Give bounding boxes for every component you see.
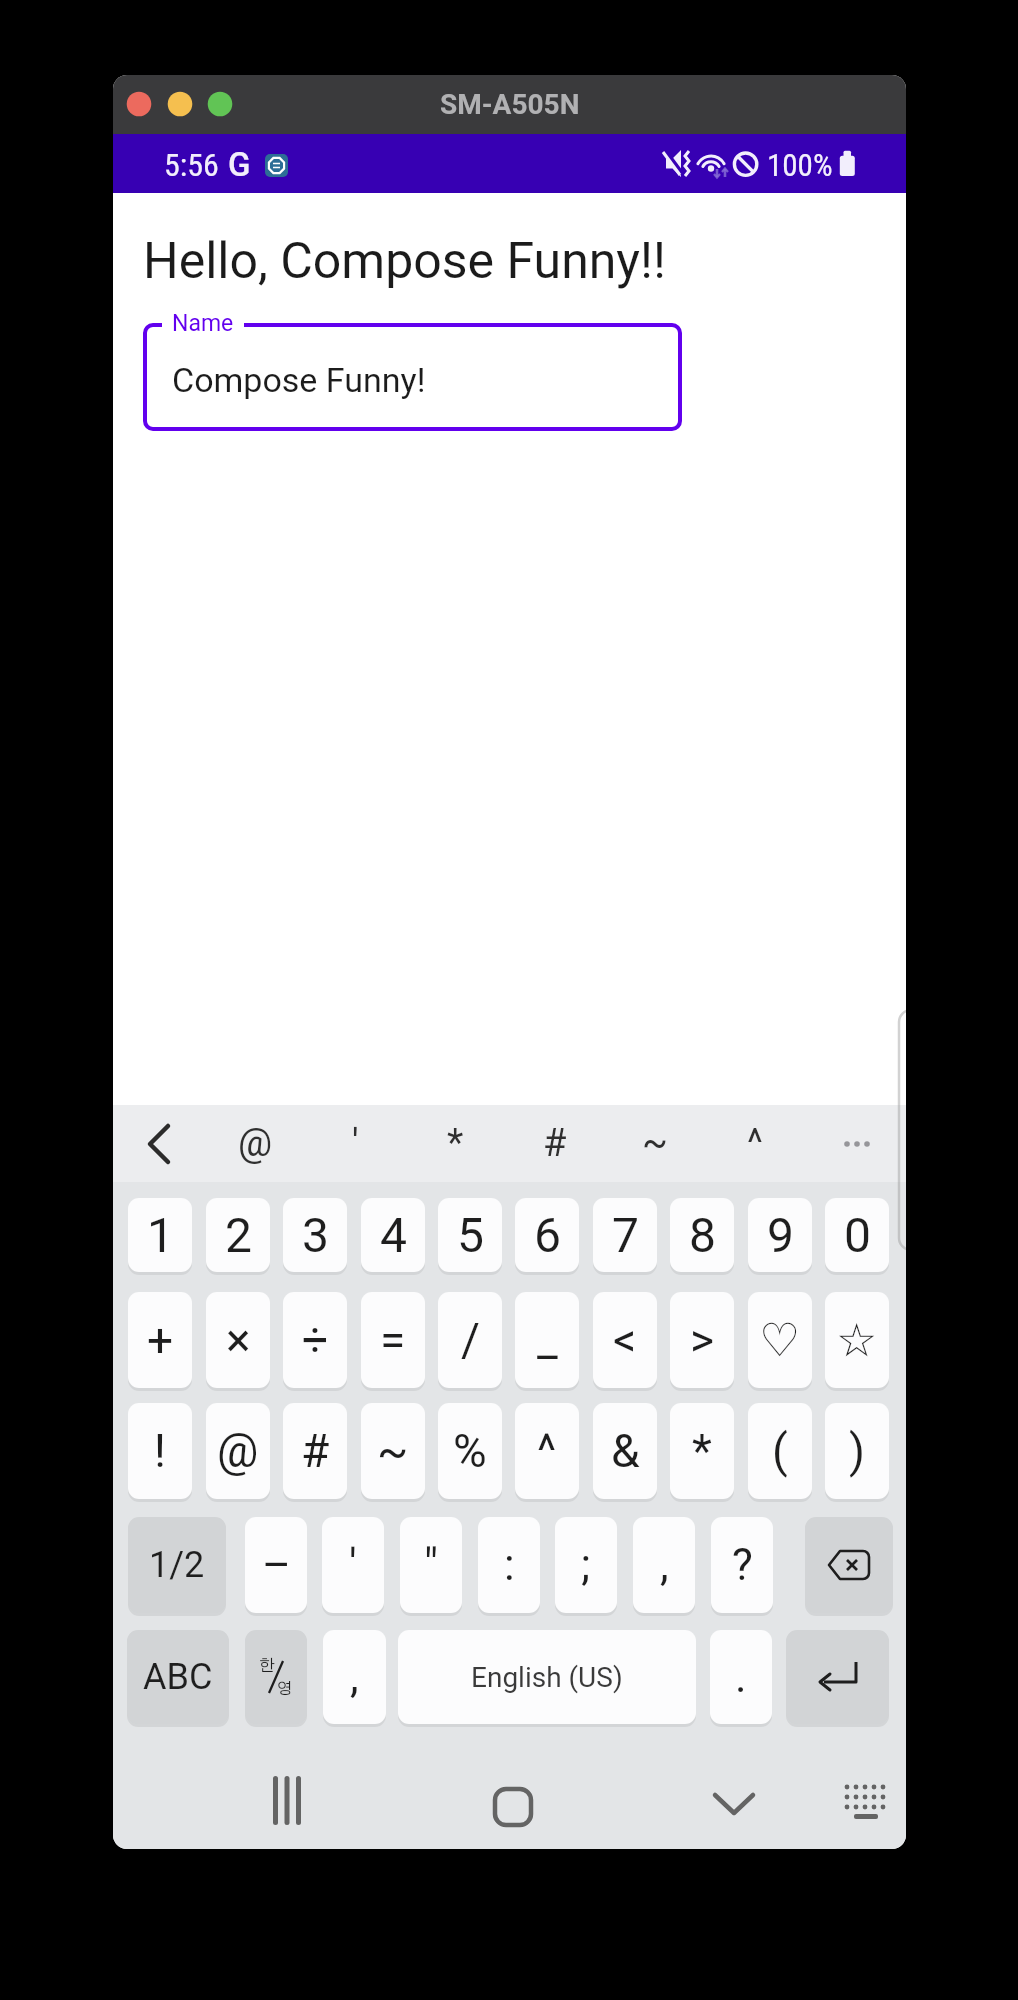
- button[interactable]: 8: [670, 1198, 734, 1272]
- button[interactable]: 1: [128, 1198, 192, 1272]
- staticText: ): [849, 1424, 866, 1478]
- staticText: *: [447, 1121, 464, 1166]
- button[interactable]: English (US): [398, 1630, 696, 1724]
- staticText: ^: [747, 1121, 763, 1166]
- staticText: ': [352, 1121, 359, 1166]
- staticText: 8: [689, 1207, 716, 1263]
- staticText: ;: [581, 1539, 591, 1591]
- staticText: 4: [380, 1207, 407, 1263]
- staticText: 영: [277, 1678, 293, 1698]
- button[interactable]: >: [670, 1292, 734, 1388]
- staticText: _: [537, 1313, 558, 1367]
- staticText: 2: [225, 1207, 252, 1263]
- button[interactable]: :: [478, 1517, 540, 1613]
- button[interactable]: 2: [206, 1198, 270, 1272]
- staticText: ": [424, 1539, 439, 1591]
- staticText: ': [349, 1539, 357, 1591]
- button[interactable]: ABC: [127, 1630, 229, 1724]
- button[interactable]: 0: [825, 1198, 889, 1272]
- staticText: Hello, Compose Funny!!: [143, 232, 666, 291]
- staticText: 한: [259, 1655, 275, 1675]
- staticText: =: [380, 1313, 406, 1367]
- staticText: ~: [377, 1424, 409, 1478]
- button[interactable]: ^: [515, 1403, 579, 1499]
- staticText: @: [217, 1424, 259, 1478]
- staticText: English (US): [471, 1661, 623, 1694]
- staticText: ,: [660, 1539, 669, 1591]
- button[interactable]: 7: [593, 1198, 657, 1272]
- button[interactable]: [786, 1630, 889, 1724]
- button[interactable]: !: [128, 1403, 192, 1499]
- staticText: +: [147, 1313, 174, 1367]
- staticText: ×: [226, 1313, 251, 1367]
- button[interactable]: ,: [633, 1517, 695, 1613]
- staticText: %: [453, 1424, 487, 1478]
- button[interactable]: 6: [515, 1198, 579, 1272]
- staticText: ?: [732, 1539, 753, 1591]
- staticText: –: [262, 1539, 291, 1591]
- button[interactable]: (: [748, 1403, 812, 1499]
- staticText: 3: [302, 1207, 329, 1263]
- staticText: 6: [534, 1207, 561, 1263]
- staticText: SM-A505N: [440, 88, 580, 121]
- staticText: ^: [537, 1424, 557, 1478]
- button[interactable]: %: [438, 1403, 502, 1499]
- button[interactable]: +: [128, 1292, 192, 1388]
- button[interactable]: .: [710, 1630, 772, 1724]
- button[interactable]: @: [206, 1403, 270, 1499]
- staticText: Compose Funny!: [172, 360, 426, 400]
- staticText: G: [228, 145, 251, 184]
- staticText: &: [611, 1424, 640, 1478]
- button[interactable]: Compose Funny!: [143, 323, 682, 431]
- button[interactable]: =: [361, 1292, 425, 1388]
- button[interactable]: ♡: [748, 1292, 812, 1388]
- staticText: >: [690, 1313, 715, 1367]
- staticText: (: [772, 1424, 788, 1478]
- staticText: 5: [457, 1207, 484, 1263]
- button[interactable]: ÷: [283, 1292, 347, 1388]
- button[interactable]: ~: [361, 1403, 425, 1499]
- staticText: ♡: [759, 1313, 801, 1367]
- staticText: 0: [844, 1207, 871, 1263]
- button[interactable]: ;: [555, 1517, 617, 1613]
- staticText: #: [301, 1424, 330, 1478]
- staticText: 7: [612, 1207, 639, 1263]
- button[interactable]: ×: [206, 1292, 270, 1388]
- button[interactable]: 9: [748, 1198, 812, 1272]
- button[interactable]: ☆: [825, 1292, 889, 1388]
- button[interactable]: ?: [711, 1517, 773, 1613]
- staticText: 100%: [767, 147, 833, 183]
- button[interactable]: 한: [245, 1630, 307, 1724]
- staticText: ☆: [836, 1313, 878, 1367]
- staticText: ABC: [143, 1656, 213, 1698]
- button[interactable]: 4: [361, 1198, 425, 1272]
- button[interactable]: ": [400, 1517, 462, 1613]
- staticText: 1/2: [149, 1544, 205, 1586]
- button[interactable]: ,: [323, 1630, 386, 1724]
- staticText: 5:56: [164, 146, 219, 184]
- staticText: !: [154, 1424, 166, 1478]
- button[interactable]: /: [438, 1292, 502, 1388]
- button[interactable]: *: [670, 1403, 734, 1499]
- staticText: .: [735, 1651, 747, 1703]
- staticText: /: [461, 1313, 480, 1367]
- button[interactable]: #: [283, 1403, 347, 1499]
- staticText: #: [543, 1121, 567, 1166]
- staticText: Name: [172, 310, 234, 337]
- button[interactable]: 3: [283, 1198, 347, 1272]
- button[interactable]: <: [593, 1292, 657, 1388]
- staticText: <: [613, 1313, 637, 1367]
- button[interactable]: &: [593, 1403, 657, 1499]
- button[interactable]: –: [245, 1517, 307, 1613]
- staticText: ~: [642, 1121, 668, 1166]
- button[interactable]: 1/2: [128, 1517, 226, 1613]
- button[interactable]: ': [322, 1517, 384, 1613]
- staticText: 9: [767, 1207, 794, 1263]
- button[interactable]: ): [825, 1403, 889, 1499]
- button[interactable]: 5: [438, 1198, 502, 1272]
- button[interactable]: _: [515, 1292, 579, 1388]
- staticText: *: [692, 1424, 712, 1478]
- staticText: :: [504, 1539, 515, 1591]
- staticText: @: [238, 1121, 273, 1166]
- button[interactable]: [805, 1517, 893, 1613]
